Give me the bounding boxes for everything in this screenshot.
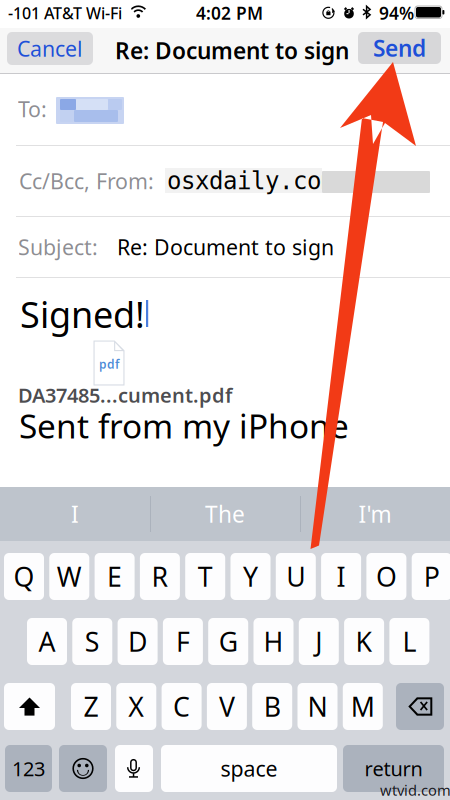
staticText: R	[151, 559, 168, 594]
button[interactable]: S	[72, 618, 112, 665]
staticText: To:	[18, 95, 47, 123]
staticText: The	[205, 499, 245, 529]
staticText: C	[173, 689, 190, 724]
staticText: Y	[243, 559, 258, 594]
button[interactable]: A	[27, 618, 67, 665]
button[interactable]: W	[49, 553, 89, 600]
staticText: P	[424, 559, 440, 594]
button[interactable]: Shift	[4, 683, 55, 730]
staticText: H	[263, 624, 283, 659]
button[interactable]: E	[95, 553, 135, 600]
button[interactable]: Delete	[396, 683, 444, 730]
staticText: U	[286, 559, 305, 594]
staticText: Signed!	[20, 290, 145, 338]
button[interactable]: 123	[5, 745, 52, 792]
staticText: I'm	[358, 499, 391, 529]
staticText: T	[198, 559, 213, 594]
button[interactable]: J	[299, 618, 339, 665]
staticText: return	[364, 755, 422, 782]
button[interactable]: L	[389, 618, 429, 665]
button[interactable]: Q	[4, 553, 44, 600]
staticText: M	[351, 689, 375, 724]
staticText: E	[107, 559, 122, 594]
button[interactable]: Dictation	[115, 745, 153, 792]
staticText: 123	[12, 755, 45, 782]
staticText: -101 AT&T Wi-Fi	[8, 2, 122, 24]
staticText: W	[57, 559, 82, 594]
staticText: space	[220, 754, 277, 783]
staticText: pdf	[99, 356, 119, 372]
staticText: I	[71, 499, 79, 529]
staticText: 94%	[379, 1, 414, 24]
staticText: S	[85, 624, 100, 659]
button[interactable]: D	[118, 618, 158, 665]
staticText: V	[219, 689, 235, 724]
button[interactable]: M	[343, 683, 383, 730]
staticText: Re: Document to sign	[115, 35, 349, 65]
staticText: osxdaily.com	[167, 167, 335, 195]
button[interactable]: I	[0, 0, 450, 800]
staticText: Q	[13, 559, 34, 594]
button[interactable]: return	[343, 745, 444, 792]
staticText: G	[219, 624, 238, 659]
staticText: Z	[83, 689, 98, 724]
staticText: Subject:	[18, 233, 98, 261]
button[interactable]: X	[116, 683, 156, 730]
staticText: Send	[373, 33, 426, 63]
staticText: D	[128, 624, 147, 659]
button[interactable]: Cancel	[0, 0, 450, 800]
staticText: Cancel	[17, 34, 83, 63]
button[interactable]: K	[344, 618, 384, 665]
staticText: F	[176, 624, 190, 659]
button[interactable]: O	[366, 553, 406, 600]
button[interactable]: space	[161, 745, 337, 792]
staticText: wtvid.com	[380, 780, 450, 800]
staticText: K	[356, 624, 373, 659]
button[interactable]: F	[163, 618, 203, 665]
button[interactable]: H	[253, 618, 293, 665]
button[interactable]: P	[412, 553, 450, 600]
button[interactable]: N	[297, 683, 337, 730]
staticText: Re: Document to sign	[117, 233, 334, 261]
staticText: I	[337, 559, 346, 594]
staticText: 4:02 PM	[196, 1, 263, 24]
staticText: Cc/Bcc, From:	[19, 167, 154, 195]
button[interactable]: I	[321, 553, 361, 600]
button[interactable]: Emoji keyboard	[59, 745, 107, 792]
staticText: X	[128, 689, 144, 724]
button[interactable]: B	[252, 683, 292, 730]
staticText: J	[315, 624, 322, 659]
staticText: L	[402, 624, 416, 659]
button[interactable]: The	[0, 0, 450, 800]
button[interactable]: G	[208, 618, 248, 665]
staticText: N	[307, 689, 327, 724]
staticText: DA37485...cument.pdf	[18, 382, 232, 408]
staticText: Sent from my iPhone	[19, 403, 349, 448]
button[interactable]: Z	[71, 683, 111, 730]
button[interactable]: C	[162, 683, 202, 730]
staticText: O	[376, 559, 397, 594]
button[interactable]: T	[185, 553, 225, 600]
button[interactable]: U	[276, 553, 316, 600]
button[interactable]: I'm	[0, 0, 450, 800]
staticText: A	[38, 624, 55, 659]
button[interactable]: V	[207, 683, 247, 730]
button[interactable]: Y	[230, 553, 270, 600]
button[interactable]: Send	[0, 0, 450, 800]
staticText: B	[264, 689, 281, 724]
button[interactable]: R	[140, 553, 180, 600]
